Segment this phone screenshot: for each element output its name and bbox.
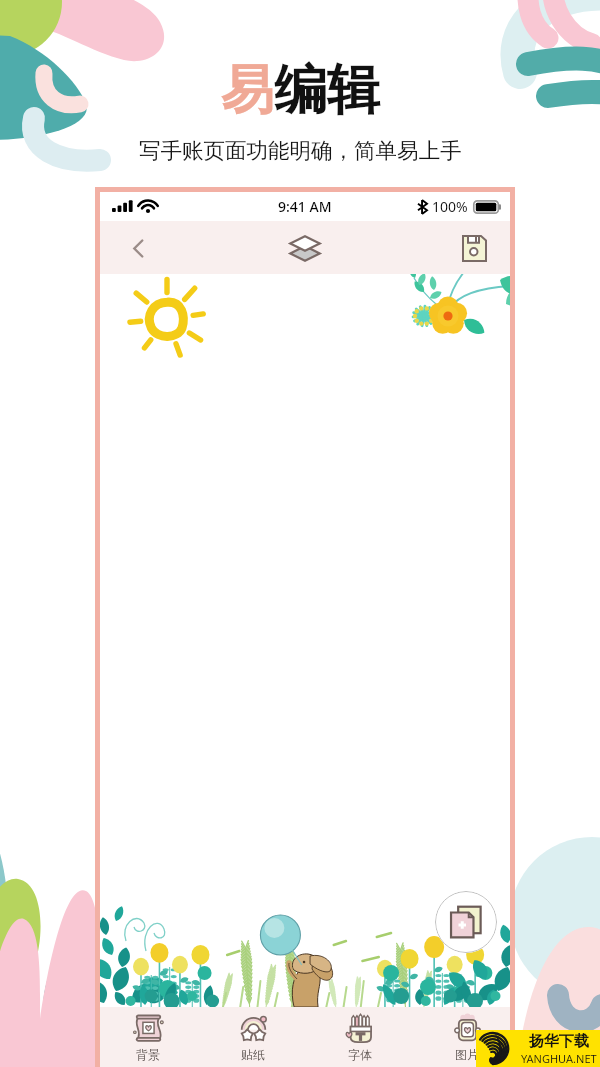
button[interactable]: Add page	[435, 891, 497, 953]
button[interactable]: Layers	[282, 225, 328, 271]
staticText: 贴纸	[241, 1047, 265, 1062]
button[interactable]: 字体	[320, 1009, 400, 1066]
staticText: YANGHUA.NET	[521, 1051, 597, 1066]
staticText: 背景	[136, 1047, 160, 1062]
button[interactable]: Save	[454, 228, 494, 268]
staticText: 字体	[348, 1047, 372, 1062]
staticText: 100%	[432, 197, 468, 216]
button[interactable]: 背景	[108, 1009, 188, 1066]
staticText: 扬华下载	[529, 1032, 589, 1051]
staticText: 编辑	[274, 57, 380, 124]
button[interactable]: 贴纸	[213, 1009, 293, 1066]
staticText: 易	[221, 57, 274, 124]
staticText: 9:41 AM	[278, 197, 332, 216]
staticText: 图片	[455, 1047, 479, 1062]
button[interactable]: Back	[118, 228, 158, 268]
staticText: 写手账页面功能明确，简单易上手	[139, 137, 462, 164]
button[interactable]: 图片	[427, 1009, 507, 1066]
